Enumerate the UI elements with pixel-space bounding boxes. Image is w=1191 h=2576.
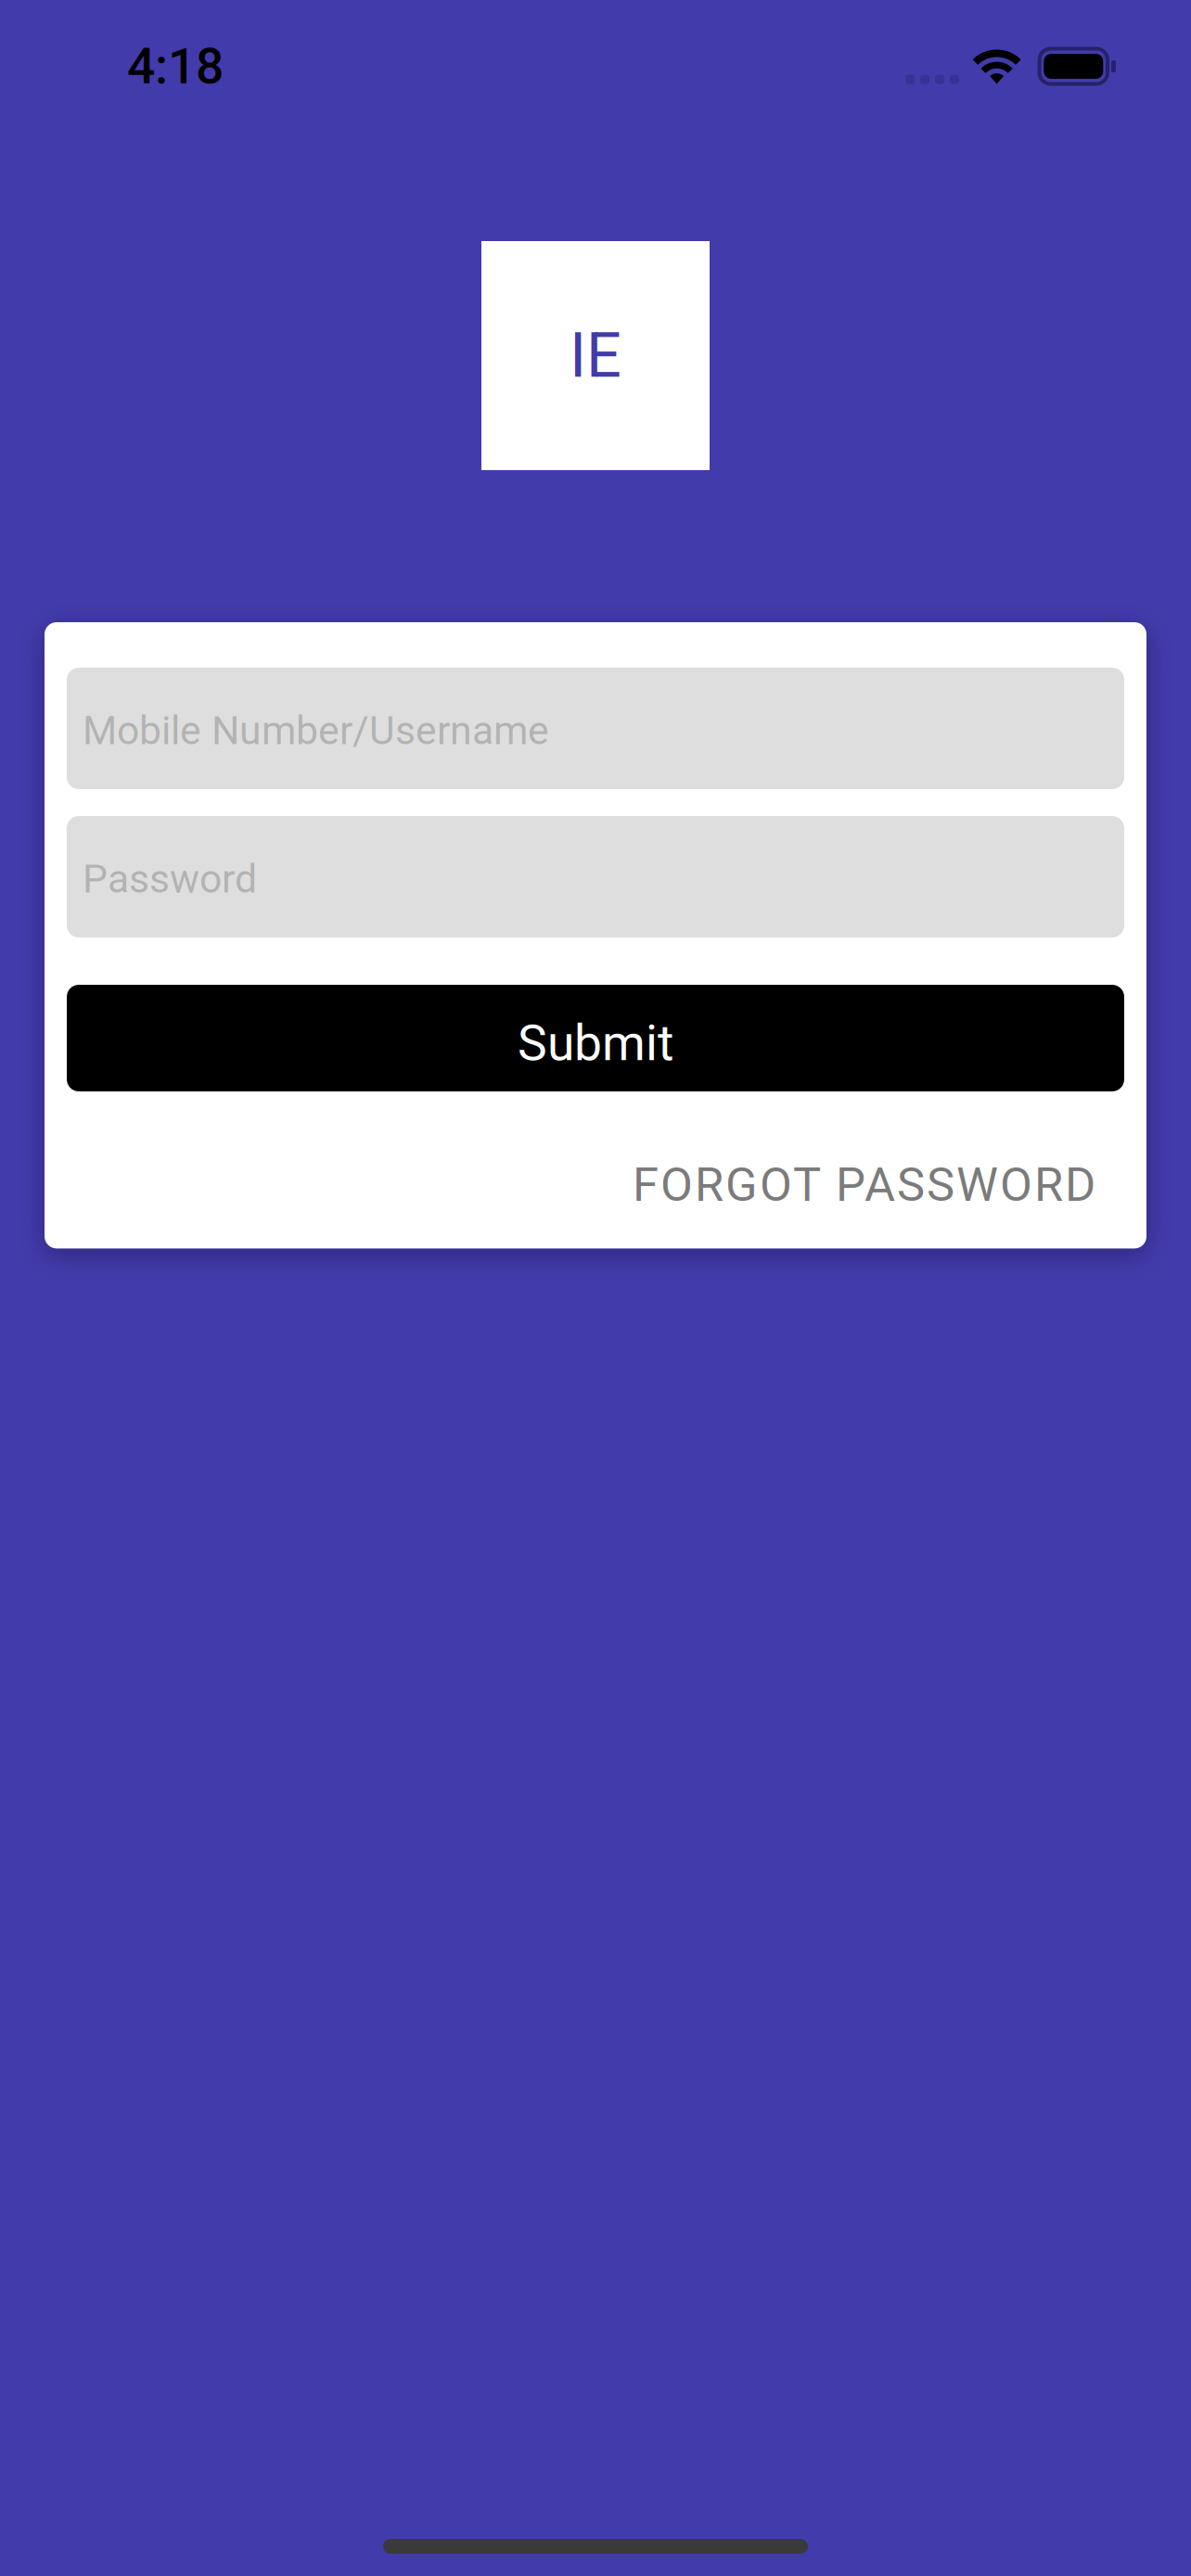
button[interactable]: Mobile Number/Username [67, 668, 1124, 789]
staticText: Submit [518, 1014, 673, 1072]
staticText: Mobile Number/Username [83, 708, 549, 754]
button[interactable]: Submit [67, 985, 1124, 1091]
button[interactable]: FORGOT PASSWORD [67, 1157, 1124, 1212]
staticText: FORGOT PASSWORD [633, 1157, 1095, 1212]
staticText: 4:18 [127, 37, 224, 95]
staticText: IE [570, 319, 621, 392]
button[interactable]: Password [67, 816, 1124, 937]
staticText: Password [83, 856, 257, 902]
